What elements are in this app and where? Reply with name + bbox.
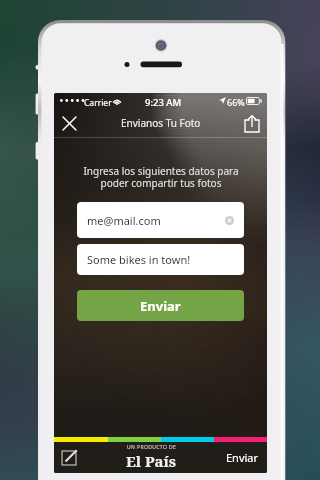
button[interactable]: Share	[237, 108, 267, 138]
staticText: 9:23 AM	[145, 96, 182, 109]
staticText: El País	[126, 451, 177, 471]
staticText: Ingresa los siguientes datos para poder …	[83, 164, 239, 190]
staticText: Envianos Tu Foto	[121, 116, 201, 130]
staticText: Enviar	[140, 297, 181, 315]
button[interactable]: me@mail.com	[77, 202, 244, 238]
staticText: me@mail.com	[87, 213, 161, 228]
staticText: Some bikes in town!	[87, 252, 191, 267]
staticText: 66%	[227, 96, 245, 108]
button[interactable]: Some bikes in town!	[77, 244, 244, 275]
staticText: UN PRODUCTO DE	[127, 444, 177, 451]
button[interactable]: Close	[54, 108, 84, 138]
staticText: Enviar	[226, 450, 259, 465]
staticText: Carrier	[84, 97, 112, 109]
button[interactable]: Enviar	[218, 450, 267, 465]
button[interactable]: Enviar	[77, 290, 244, 321]
button[interactable]: Compose	[54, 443, 84, 473]
